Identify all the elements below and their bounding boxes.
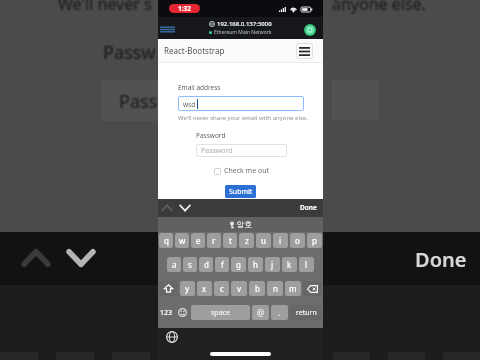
button[interactable]: l (299, 257, 314, 272)
button[interactable]: g (231, 257, 246, 272)
button[interactable]: t (223, 233, 237, 248)
staticText: n (273, 283, 278, 294)
staticText: a (172, 259, 177, 270)
staticText: o (295, 235, 300, 246)
staticText: h (253, 259, 258, 270)
staticText: We'll never s (58, 0, 152, 15)
button[interactable]: Done (300, 203, 317, 212)
button[interactable]: . (271, 305, 288, 320)
button[interactable]: p (307, 233, 322, 248)
button[interactable]: c (214, 281, 229, 296)
staticText: Passw (103, 40, 156, 65)
staticText: Email address (178, 83, 221, 92)
staticText: j (271, 259, 274, 270)
button[interactable]: space (191, 305, 250, 320)
staticText: y (185, 283, 190, 294)
button[interactable]: j (265, 257, 280, 272)
staticText: Ethereum Main Network (214, 29, 272, 36)
staticText: Password (201, 146, 233, 156)
button[interactable]: m (285, 281, 301, 296)
button[interactable]: Toggle navigation (296, 43, 313, 59)
button[interactable]: r (207, 233, 221, 248)
staticText: 암호 (237, 220, 252, 229)
button[interactable]: b (249, 281, 265, 296)
staticText: Pass (118, 90, 157, 115)
button[interactable]: 123 (159, 305, 174, 320)
staticText: Pass (118, 88, 157, 113)
button[interactable]: v (231, 281, 247, 296)
staticText: z (245, 235, 249, 246)
staticText: m (289, 283, 297, 294)
staticText: x (202, 283, 207, 294)
button[interactable]: Submit (225, 185, 256, 198)
button[interactable]: u (256, 233, 271, 248)
staticText: 123 (160, 308, 173, 318)
staticText: We'll never share your email with anyone… (178, 114, 308, 122)
button[interactable]: i (273, 233, 288, 248)
button[interactable]: d (199, 257, 213, 272)
staticText: We'll never s (59, 0, 153, 15)
button[interactable]: f (215, 257, 229, 272)
staticText: 192.168.0.137:3000 (217, 20, 272, 28)
button[interactable]: n (267, 281, 283, 296)
staticText: space (211, 308, 230, 318)
button[interactable]: z (239, 233, 254, 248)
staticText: We'll never s (59, 0, 153, 14)
staticText: We'll never s (57, 0, 151, 14)
staticText: Passw (104, 41, 157, 66)
staticText: We'll never s (59, 0, 153, 16)
button[interactable]: y (180, 281, 195, 296)
staticText: We'll never s (58, 0, 152, 14)
staticText: Passw (102, 40, 155, 65)
button[interactable]: Change keyboard (166, 331, 178, 343)
button[interactable]: Previous field (159, 200, 175, 216)
staticText: 1:32 (178, 4, 191, 13)
staticText: w (179, 235, 186, 246)
staticText: c (220, 283, 224, 294)
staticText: . (278, 307, 281, 318)
button[interactable]: Backspace (303, 281, 322, 296)
staticText: anyone else. (331, 0, 425, 16)
staticText: anyone else. (331, 0, 425, 15)
staticText: anyone else. (332, 0, 426, 15)
staticText: s (188, 259, 192, 270)
staticText: Passw (103, 41, 156, 66)
staticText: anyone else. (332, 0, 426, 16)
button[interactable]: k (282, 257, 297, 272)
staticText: Submit (229, 187, 253, 197)
staticText: @ (257, 307, 265, 318)
staticText: return (296, 308, 317, 318)
button[interactable]: a (167, 257, 181, 272)
staticText: Passw (104, 40, 157, 65)
button[interactable]: return (290, 305, 322, 320)
button[interactable]: @ (252, 305, 269, 320)
staticText: anyone else. (333, 0, 427, 15)
button[interactable]: Browser menu (160, 26, 175, 34)
button[interactable]: w (175, 233, 189, 248)
staticText: Pass (118, 89, 157, 114)
staticText: anyone else. (332, 0, 426, 14)
button[interactable]: o (290, 233, 305, 248)
button[interactable]: h (248, 257, 263, 272)
staticText: Check me out (224, 166, 270, 176)
button[interactable]: Password (196, 144, 287, 157)
button[interactable]: Next field (177, 200, 193, 216)
staticText: React-Bootstrap (164, 45, 225, 56)
staticText: r (212, 235, 216, 246)
staticText: p (312, 235, 317, 246)
staticText: b (255, 283, 260, 294)
button[interactable]: x (197, 281, 212, 296)
staticText: We'll never s (57, 0, 151, 16)
staticText: v (237, 283, 242, 294)
button[interactable]: e (191, 233, 205, 248)
staticText: i (279, 235, 282, 246)
button[interactable]: Account (304, 24, 316, 36)
button[interactable]: wsd (178, 96, 304, 111)
button[interactable]: Shift (159, 281, 178, 296)
button[interactable]: q (159, 233, 173, 248)
staticText: We'll never s (57, 0, 151, 15)
button[interactable]: Check me out (214, 166, 270, 176)
staticText: anyone else. (331, 0, 425, 14)
button[interactable]: Emoji (176, 305, 189, 320)
button[interactable]: s (183, 257, 197, 272)
